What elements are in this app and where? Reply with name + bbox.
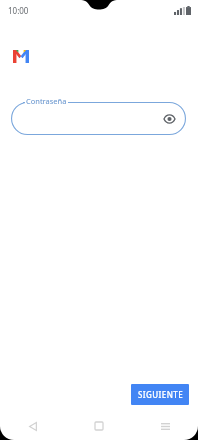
button[interactable]: SIGUIENTE — [131, 384, 189, 405]
staticText: SIGUIENTE — [138, 389, 183, 400]
button[interactable]: Apps recientes — [132, 412, 198, 440]
button[interactable]: Atrás — [0, 412, 66, 440]
button[interactable]: Inicio — [66, 412, 132, 440]
button[interactable]: Mostrar contraseña — [11, 102, 186, 135]
button[interactable]: Mostrar contraseña — [161, 111, 177, 127]
staticText: Contraseña — [26, 96, 67, 106]
staticText: 10:00 — [8, 5, 29, 16]
